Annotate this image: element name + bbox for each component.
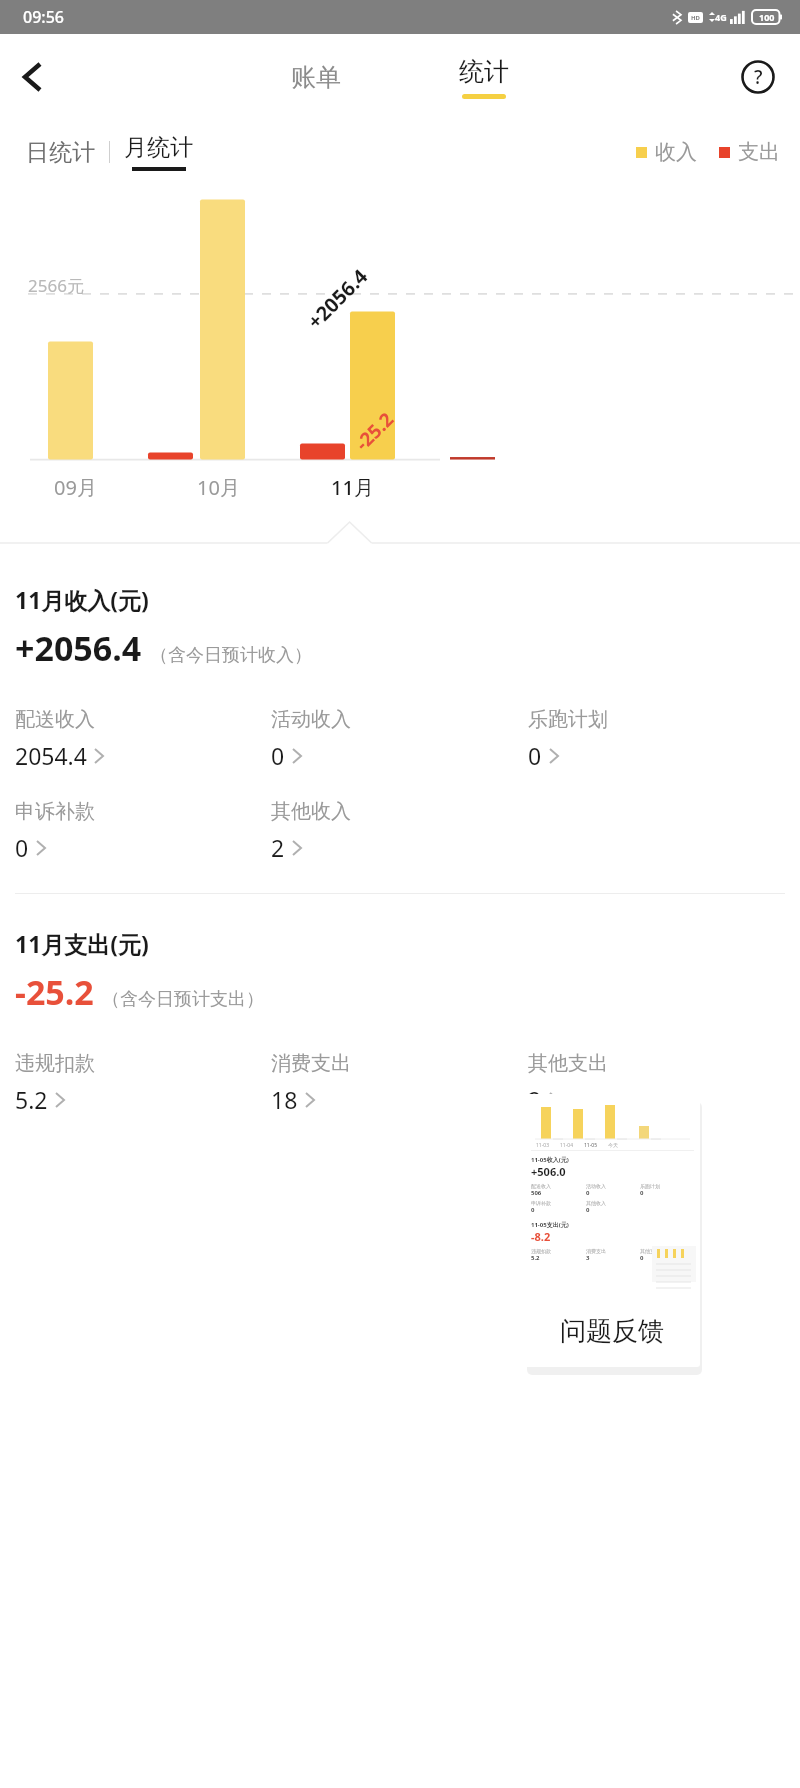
staticText: 18 <box>271 1084 298 1115</box>
staticText: ? <box>754 64 763 90</box>
button[interactable]: 活动收入 <box>271 707 357 771</box>
staticText: 0 <box>586 1206 590 1214</box>
staticText: 2054.4 <box>15 740 87 771</box>
staticText: 11-04 <box>560 1142 574 1149</box>
staticText: 11-05支出(元) <box>531 1221 569 1229</box>
staticText: 5.2 <box>15 1084 48 1115</box>
staticText: 11月 <box>331 474 374 501</box>
staticText: -8.2 <box>531 1229 551 1244</box>
button[interactable]: 其他支出 <box>528 1051 614 1115</box>
staticText: 消费支出 <box>271 1051 351 1076</box>
staticText: 乐跑计划 <box>528 707 608 732</box>
staticText: -25.2 <box>15 969 94 1015</box>
staticText: 月统计 <box>124 133 193 162</box>
staticText: 4G <box>715 11 727 23</box>
staticText: 506 <box>531 1189 542 1197</box>
staticText: 0 <box>271 740 285 771</box>
button[interactable]: 其他收入 <box>271 799 357 863</box>
staticText: 0 <box>640 1254 644 1262</box>
staticText: 收入 <box>655 139 697 165</box>
button[interactable]: 月统计 <box>116 133 201 171</box>
staticText: 违规扣款 <box>531 1248 551 1254</box>
staticText: （含今日预计收入） <box>150 644 312 667</box>
staticText: 乐跑计划 <box>640 1183 660 1189</box>
staticText: 0 <box>531 1206 535 1214</box>
staticText: 其他收入 <box>271 799 351 824</box>
staticText: 100 <box>759 11 775 23</box>
staticText: 2 <box>271 832 285 863</box>
staticText: 11月支出(元) <box>15 928 149 959</box>
staticText: 违规扣款 <box>15 1051 95 1076</box>
staticText: 2566元 <box>28 274 84 297</box>
staticText: 0 <box>528 740 542 771</box>
button[interactable]: Back <box>8 53 56 101</box>
button[interactable]: Help <box>734 53 782 101</box>
staticText: 5.2 <box>531 1254 540 1262</box>
staticText: 0 <box>586 1189 590 1197</box>
staticText: 配送收入 <box>15 707 95 732</box>
staticText: 2 <box>528 1084 542 1115</box>
staticText: 活动收入 <box>586 1183 606 1189</box>
staticText: 09:56 <box>23 6 64 28</box>
staticText: +2056.4 <box>15 625 142 671</box>
staticText: 09月 <box>54 474 97 501</box>
staticText: +2056.4 <box>301 262 373 334</box>
staticText: 3 <box>586 1254 590 1262</box>
staticText: 11月收入(元) <box>15 584 149 615</box>
staticText: 消费支出 <box>586 1248 606 1254</box>
button[interactable]: 乐跑计划 <box>528 707 614 771</box>
button[interactable]: 消费支出 <box>271 1051 357 1115</box>
staticText: HD <box>691 14 700 22</box>
button[interactable]: 日统计 <box>18 134 103 171</box>
staticText: +506.0 <box>531 1164 566 1179</box>
staticText: 11-05收入(元) <box>531 1156 569 1164</box>
staticText: 10月 <box>197 474 240 501</box>
staticText: 配送收入 <box>531 1183 551 1189</box>
button[interactable]: 申诉补款 <box>15 799 101 863</box>
button[interactable]: 账单 <box>273 56 359 99</box>
button[interactable]: 11-03 <box>523 1094 700 1367</box>
staticText: 其他收入 <box>586 1200 606 1206</box>
staticText: 活动收入 <box>271 707 351 732</box>
button[interactable]: 违规扣款 <box>15 1051 101 1115</box>
staticText: 0 <box>640 1189 644 1197</box>
staticText: 其他支出 <box>640 1248 660 1254</box>
staticText: 11-03 <box>536 1142 550 1149</box>
staticText: 日统计 <box>26 138 95 167</box>
staticText: 申诉补款 <box>531 1200 551 1206</box>
button[interactable]: 统计 <box>441 54 527 101</box>
staticText: 支出 <box>738 139 780 165</box>
staticText: 其他支出 <box>528 1051 608 1076</box>
staticText: 申诉补款 <box>15 799 95 824</box>
staticText: 账单 <box>291 62 341 93</box>
staticText: （含今日预计支出） <box>102 988 264 1011</box>
staticText: -25.2 <box>349 406 400 456</box>
staticText: 统计 <box>459 56 509 87</box>
staticText: 问题反馈 <box>560 1315 664 1348</box>
staticText: 今天 <box>608 1142 618 1148</box>
staticText: 0 <box>15 832 29 863</box>
staticText: 11-05 <box>584 1142 598 1149</box>
button[interactable]: 配送收入 <box>15 707 109 771</box>
